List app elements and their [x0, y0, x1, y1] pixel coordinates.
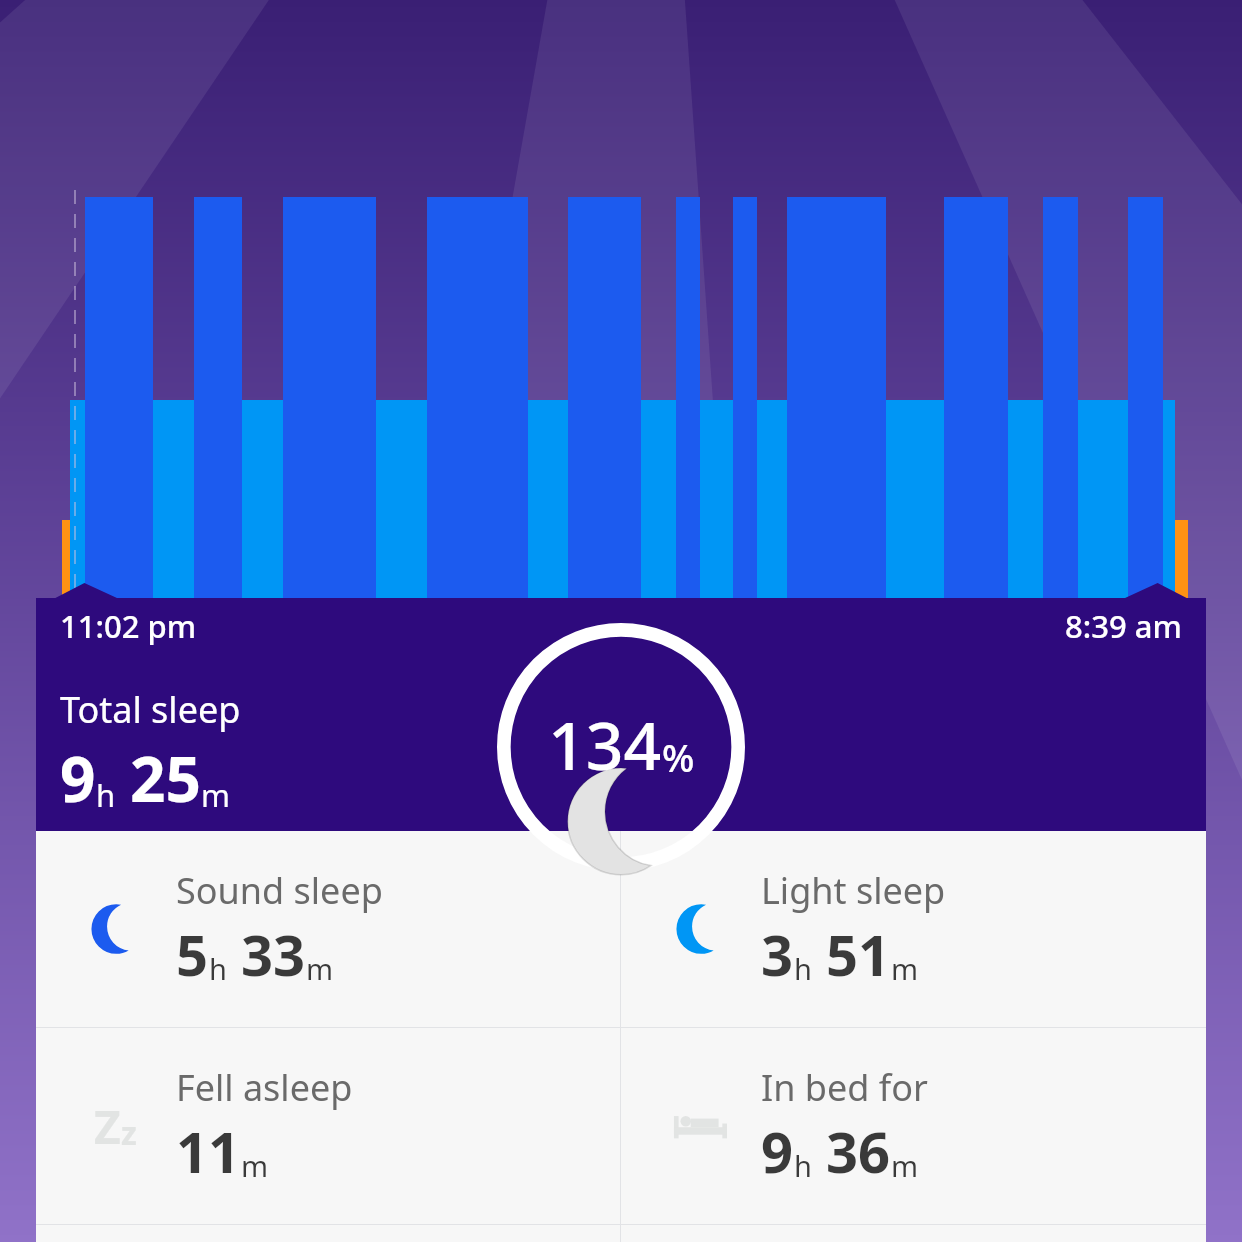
staticText: h — [209, 949, 227, 988]
staticText: 33 — [241, 916, 306, 992]
staticText: z — [121, 1111, 137, 1155]
staticText: 9 — [60, 736, 96, 820]
staticText: 36 — [826, 1113, 891, 1189]
staticText: m — [201, 774, 230, 816]
staticText: m — [891, 949, 919, 988]
staticText: Z — [94, 1095, 121, 1157]
staticText: Total sleep — [60, 685, 241, 734]
button[interactable]: Z — [36, 1028, 620, 1224]
staticText: % — [662, 731, 695, 783]
staticText: m — [306, 949, 334, 988]
button[interactable]: Sound sleep — [36, 831, 620, 1027]
staticText: 11:02 pm — [60, 605, 196, 647]
button[interactable]: In bed for — [621, 1028, 1206, 1224]
staticText: 8:39 am — [1065, 605, 1182, 647]
staticText: In bed for — [761, 1063, 928, 1112]
button[interactable]: Sleep score 134 percent — [497, 623, 745, 871]
staticText: 25 — [130, 736, 201, 820]
staticText: 5 — [176, 916, 209, 992]
staticText: h — [794, 949, 812, 988]
staticText: Fell asleep — [176, 1063, 353, 1112]
staticText: Light sleep — [761, 866, 946, 915]
button[interactable]: Light sleep — [621, 831, 1206, 1027]
staticText: 3 — [761, 916, 794, 992]
staticText: Sound sleep — [176, 866, 383, 915]
staticText: 9 — [761, 1113, 794, 1189]
staticText: 11 — [176, 1113, 241, 1189]
staticText: 51 — [826, 916, 891, 992]
staticText: h — [96, 774, 116, 816]
staticText: h — [794, 1146, 812, 1185]
staticText: m — [241, 1146, 269, 1185]
staticText: m — [891, 1146, 919, 1185]
staticText: 134 — [548, 699, 662, 789]
